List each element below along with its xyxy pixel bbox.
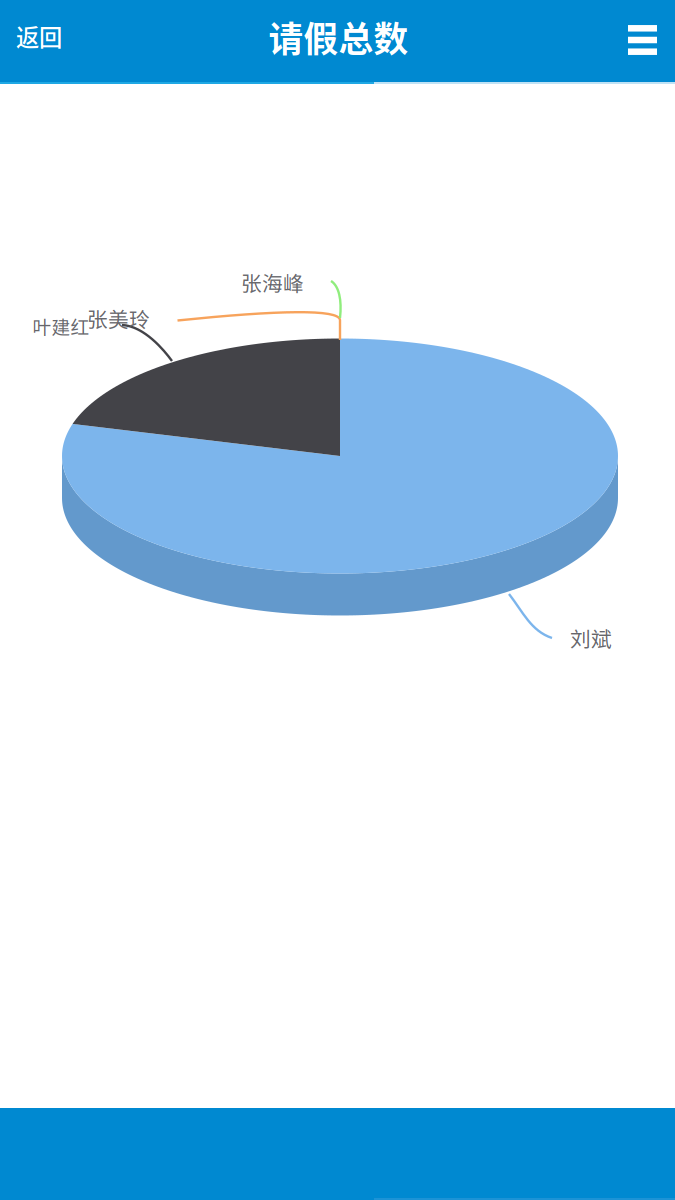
staticText: 叶建红	[32, 312, 89, 339]
button[interactable]: 返回	[0, 9, 78, 73]
staticText: 返回	[16, 19, 62, 53]
staticText: 请假总数	[268, 12, 408, 62]
button[interactable]: 菜单	[595, 9, 675, 73]
staticText: 张海峰	[241, 267, 304, 297]
staticText: 张美玲	[87, 303, 150, 333]
staticText: 刘斌	[570, 623, 612, 653]
